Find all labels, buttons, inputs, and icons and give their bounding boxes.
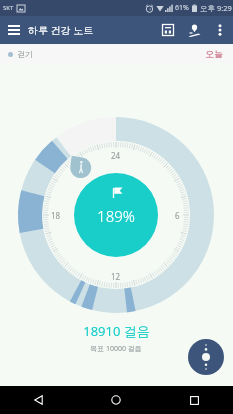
staticText: 18 [51,210,61,221]
staticText: 걷기 [17,49,33,59]
staticText: 목표 10000 걸음 [90,344,142,354]
staticText: 189% [97,206,135,226]
button[interactable]: 오늘 [203,48,225,59]
staticText: 오후 9:29 [200,3,232,13]
staticText: 24 [111,150,121,161]
staticText: 6 [175,210,180,221]
staticText: 하루 건강 노트 [28,23,94,37]
staticText: SKT [3,4,14,12]
button[interactable]: Home [77,386,155,414]
button[interactable]: Route map [181,17,207,43]
button[interactable]: More options [207,17,233,43]
button[interactable]: Navigation menu [0,16,28,44]
button[interactable]: Recent apps [155,386,233,414]
staticText: 61% [175,3,189,13]
staticText: 18910 걸음 [83,322,150,340]
staticText: 12 [111,271,121,282]
button[interactable]: Calendar [155,17,181,43]
button[interactable]: Back [0,386,77,414]
button[interactable]: 걷기 [6,49,35,59]
button[interactable]: More actions [188,339,224,375]
staticText: 오늘 [205,48,223,59]
